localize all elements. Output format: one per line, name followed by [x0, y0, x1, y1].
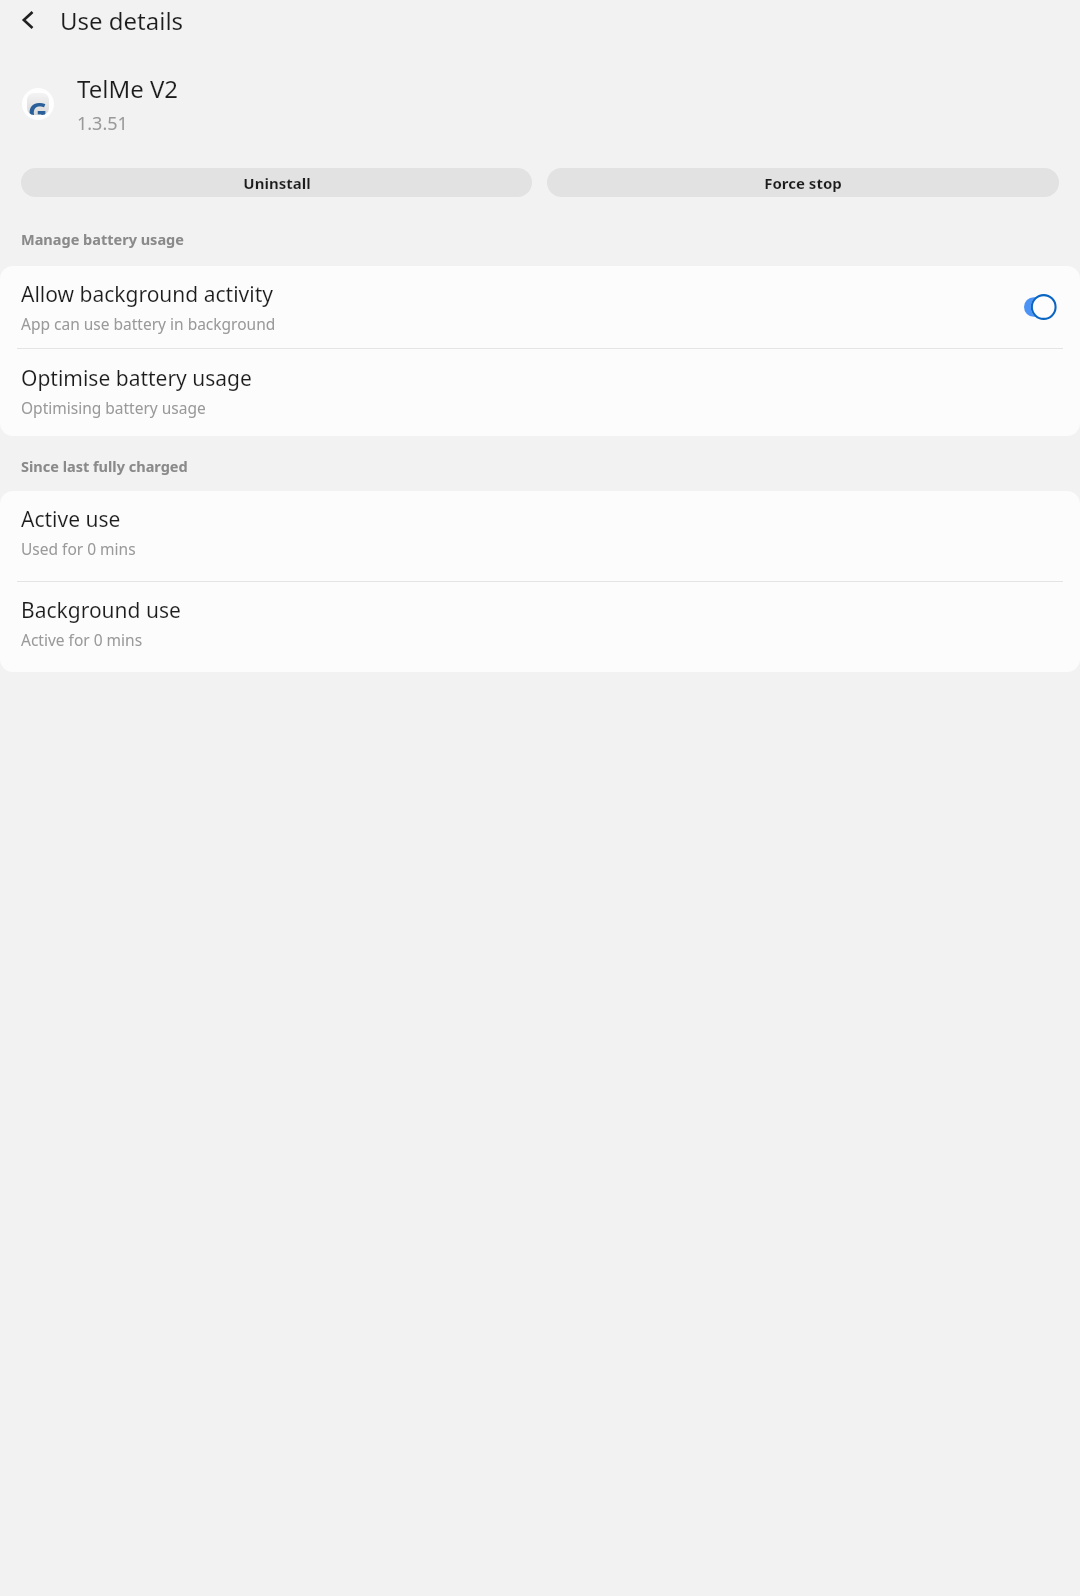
staticText: TelMe V2	[77, 72, 179, 105]
staticText: Active use	[21, 505, 121, 534]
staticText: Optimising battery usage	[21, 397, 206, 418]
button[interactable]: Back	[8, 0, 48, 40]
button[interactable]: Active use	[0, 491, 1080, 581]
button[interactable]: Force stop	[547, 168, 1059, 197]
staticText: Background use	[21, 596, 181, 625]
staticText: Use details	[60, 4, 184, 37]
staticText: Used for 0 mins	[21, 538, 136, 559]
staticText: Allow background activity	[21, 280, 273, 309]
staticText: Force stop	[764, 173, 842, 193]
staticText: Optimise battery usage	[21, 364, 252, 393]
button[interactable]: Allow background activity	[0, 266, 1080, 348]
staticText: 1.3.51	[77, 111, 128, 136]
staticText: App can use battery in background	[21, 313, 276, 334]
button[interactable]: Uninstall	[21, 168, 532, 197]
button[interactable]: Allow background activity toggle	[1019, 291, 1059, 323]
staticText: Manage battery usage	[21, 229, 184, 249]
staticText: Active for 0 mins	[21, 629, 143, 650]
button[interactable]: Optimise battery usage	[0, 349, 1080, 436]
staticText: G	[28, 93, 48, 115]
staticText: Since last fully charged	[21, 456, 188, 476]
button[interactable]: Background use	[0, 582, 1080, 672]
staticText: Uninstall	[243, 173, 311, 193]
